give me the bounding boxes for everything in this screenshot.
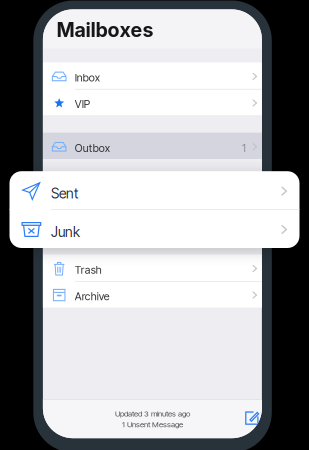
staticText: Mailboxes	[56, 18, 153, 42]
staticText: Junk	[51, 223, 80, 240]
button[interactable]: VIP	[43, 89, 262, 115]
button[interactable]: Outbox	[43, 133, 262, 159]
button[interactable]: Inbox	[43, 62, 262, 89]
staticText: Inbox	[75, 71, 100, 84]
button[interactable]: Junk	[9, 209, 299, 248]
staticText: 1	[242, 141, 246, 154]
staticText: VIP	[75, 98, 90, 111]
button[interactable]: Sent	[9, 171, 299, 209]
staticText: 1 Unsent Message	[122, 420, 183, 429]
staticText: Trash	[75, 263, 102, 276]
button[interactable]: Trash	[43, 254, 262, 281]
button[interactable]: Archive	[43, 281, 262, 307]
button[interactable]: Compose	[245, 411, 262, 427]
staticText: Sent	[51, 185, 78, 202]
staticText: Updated 3 minutes ago	[115, 409, 190, 418]
staticText: Outbox	[75, 141, 110, 154]
staticText: Archive	[75, 290, 110, 303]
